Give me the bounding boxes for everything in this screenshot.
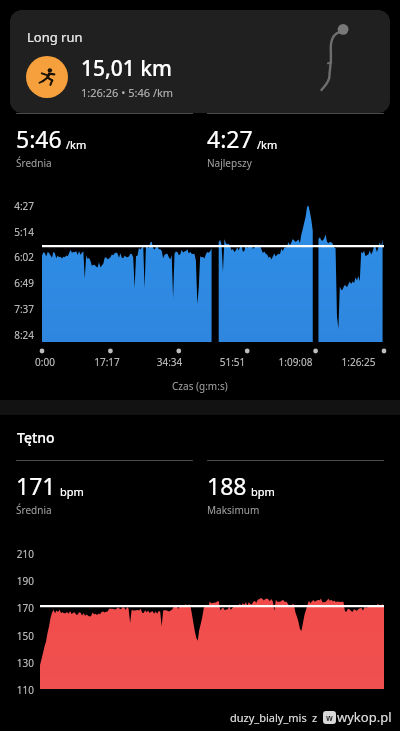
staticText: 1:26:26 • 5:46 /km <box>81 85 174 100</box>
staticText: bpm <box>60 484 84 499</box>
staticText: wykop.pl <box>337 708 392 726</box>
staticText: 1:09:08 <box>264 355 327 369</box>
staticText: Średnia <box>16 156 52 170</box>
staticText: 110 <box>0 683 34 697</box>
staticText: 130 <box>0 656 34 670</box>
staticText: 150 <box>0 629 34 643</box>
staticText: 171 <box>16 470 56 501</box>
staticText: 34:34 <box>138 355 201 369</box>
staticText: Najlepszy <box>207 156 252 170</box>
staticText: 8:24 <box>0 328 34 342</box>
staticText: 15,01 km <box>81 54 172 83</box>
staticText: 0:00 <box>14 355 76 369</box>
staticText: w <box>326 712 333 723</box>
staticText: 7:37 <box>0 302 34 316</box>
staticText: 4:27 <box>207 123 253 154</box>
staticText: Czas (g:m:s) <box>172 379 228 393</box>
staticText: 5:46 <box>16 123 62 154</box>
staticText: 210 <box>0 547 34 561</box>
staticText: Long run <box>27 28 83 46</box>
staticText: 5:14 <box>0 225 34 239</box>
staticText: bpm <box>251 484 275 499</box>
staticText: Tętno <box>17 428 55 447</box>
staticText: z <box>312 710 318 725</box>
staticText: 51:51 <box>201 355 264 369</box>
staticText: 190 <box>0 574 34 588</box>
staticText: 188 <box>207 470 247 501</box>
staticText: Maksimum <box>207 503 260 517</box>
button[interactable]: Long run <box>10 10 390 113</box>
staticText: /km <box>66 137 87 152</box>
staticText: 6:02 <box>0 250 34 264</box>
staticText: 1:26:25 <box>327 355 390 369</box>
staticText: /km <box>257 137 278 152</box>
staticText: Średnia <box>16 503 52 517</box>
staticText: 6:49 <box>0 276 34 290</box>
staticText: 4:27 <box>0 199 34 213</box>
staticText: 17:17 <box>76 355 138 369</box>
staticText: duzy_bialy_mis <box>230 710 307 725</box>
staticText: 170 <box>0 601 34 615</box>
